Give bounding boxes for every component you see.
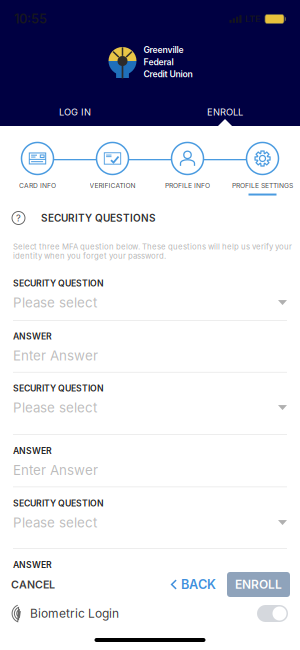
button[interactable]: PROFILE SETTINGS <box>225 143 300 195</box>
staticText: PROFILE SETTINGS <box>232 181 293 190</box>
staticText: LOG IN <box>59 106 91 118</box>
staticText: ANSWER <box>13 446 52 456</box>
staticText: Greenville <box>143 45 183 55</box>
button[interactable]: BACK <box>171 569 216 599</box>
button[interactable]: SECURITY QUESTION <box>0 487 300 549</box>
staticText: Enter Answer <box>13 576 98 592</box>
button[interactable]: VERIFICATION <box>75 143 150 195</box>
staticText: Enter Answer <box>13 462 98 478</box>
staticText: identity when you forget your password. <box>13 251 166 261</box>
staticText: PROFILE INFO <box>165 181 210 190</box>
staticText: SECURITY QUESTIONS <box>41 212 156 224</box>
staticText: Biometric Login <box>30 606 119 621</box>
staticText: Enter Answer <box>13 348 98 364</box>
staticText: LTE <box>245 13 261 25</box>
staticText: SECURITY QUESTION <box>13 278 104 288</box>
button[interactable]: ENROLL <box>150 102 300 122</box>
staticText: ANSWER <box>13 331 52 342</box>
button[interactable]: LOG IN <box>0 102 150 122</box>
staticText: CANCEL <box>11 578 55 591</box>
staticText: ENROLL <box>235 577 282 592</box>
button[interactable]: ENROLL <box>227 572 290 597</box>
button[interactable]: SECURITY QUESTION <box>0 267 300 321</box>
button[interactable]: ANSWER <box>0 549 300 601</box>
staticText: CARD INFO <box>19 181 56 190</box>
staticText: Please select <box>13 399 97 416</box>
staticText: ANSWER <box>13 560 52 570</box>
button[interactable]: CANCEL <box>0 569 63 599</box>
staticText: Please select <box>13 294 97 311</box>
staticText: BACK <box>181 577 216 592</box>
staticText: ? <box>16 212 21 224</box>
staticText: Credit Union <box>143 69 192 79</box>
button[interactable]: PROFILE INFO <box>150 143 225 195</box>
staticText: Federal <box>143 57 173 67</box>
staticText: Please select <box>13 514 97 531</box>
staticText: SECURITY QUESTION <box>13 498 104 508</box>
staticText: VERIFICATION <box>89 181 135 190</box>
button[interactable]: CARD INFO <box>0 143 75 195</box>
button[interactable]: ANSWER <box>0 321 300 372</box>
button[interactable]: SECURITY QUESTION <box>0 372 300 435</box>
staticText: Select three MFA question below. These q… <box>13 242 292 251</box>
staticText: SECURITY QUESTION <box>13 383 104 393</box>
staticText: ENROLL <box>207 106 243 118</box>
button[interactable]: ANSWER <box>0 435 300 487</box>
staticText: 10:55 <box>14 11 47 27</box>
